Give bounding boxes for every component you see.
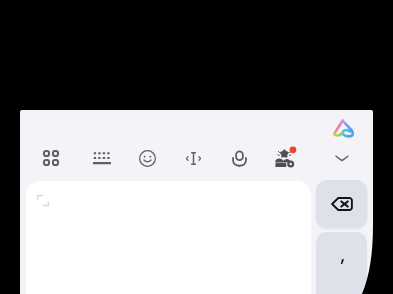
- button[interactable]: Voice input: [221, 140, 257, 176]
- button[interactable]: Stickers: [267, 140, 303, 176]
- button[interactable]: Backspace: [316, 180, 367, 228]
- button[interactable]: Keyboard: [84, 140, 120, 176]
- button[interactable]: Apps: [33, 140, 69, 176]
- button[interactable]: Emoji: [129, 140, 165, 176]
- button[interactable]: ,: [316, 232, 367, 294]
- button[interactable]: Text editing: [175, 140, 211, 176]
- button[interactable]: Collapse: [324, 140, 360, 176]
- button[interactable]: Assistant: [320, 110, 364, 144]
- staticText: ,: [340, 240, 346, 267]
